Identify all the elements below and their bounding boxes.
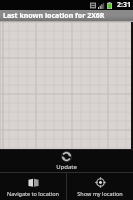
staticText: 2:31 [117,0,131,10]
staticText: Show my location [77,190,123,197]
button[interactable]: Show my location [67,173,133,200]
button[interactable]: Update [0,150,133,172]
button[interactable]: Navigate to location [0,173,66,200]
staticText: Navigate to location [7,190,59,197]
staticText: Last known location for 2X6R [3,11,105,21]
staticText: Update [56,163,77,171]
